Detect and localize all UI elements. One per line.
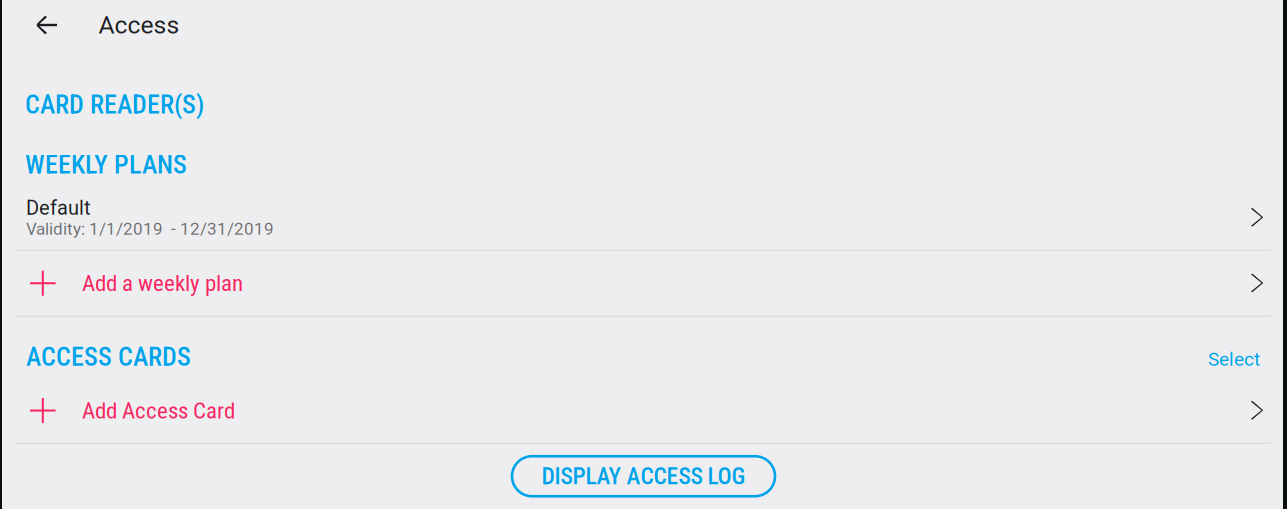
staticText: Access	[98, 10, 179, 39]
staticText: Add Access Card	[82, 397, 235, 424]
staticText: DISPLAY ACCESS LOG	[541, 462, 745, 490]
button[interactable]: Add Access Card	[0, 378, 1287, 443]
staticText: Default	[26, 196, 91, 220]
staticText: Add a weekly plan	[82, 270, 243, 297]
button[interactable]: Add a weekly plan	[0, 251, 1287, 316]
button[interactable]: Default	[0, 185, 1287, 250]
staticText: Validity: 1/1/2019 - 12/31/2019	[26, 219, 274, 239]
staticText: ACCESS CARDS	[26, 342, 191, 372]
staticText: Select	[1208, 348, 1260, 370]
button[interactable]: Back	[0, 0, 72, 50]
staticText: WEEKLY PLANS	[25, 149, 187, 180]
button[interactable]: DISPLAY ACCESS LOG	[512, 456, 775, 496]
button[interactable]: Select	[1208, 342, 1260, 372]
staticText: CARD READER(S)	[25, 89, 204, 120]
